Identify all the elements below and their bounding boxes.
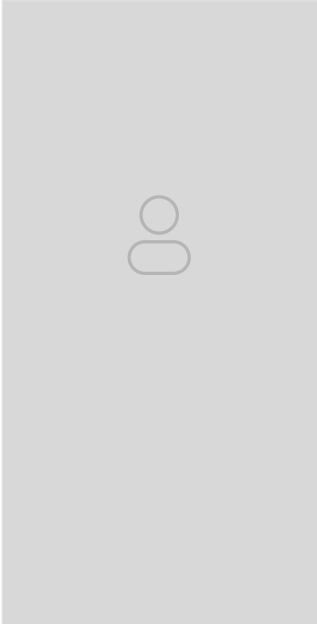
button[interactable]: Profile photo — [0, 0, 317, 624]
